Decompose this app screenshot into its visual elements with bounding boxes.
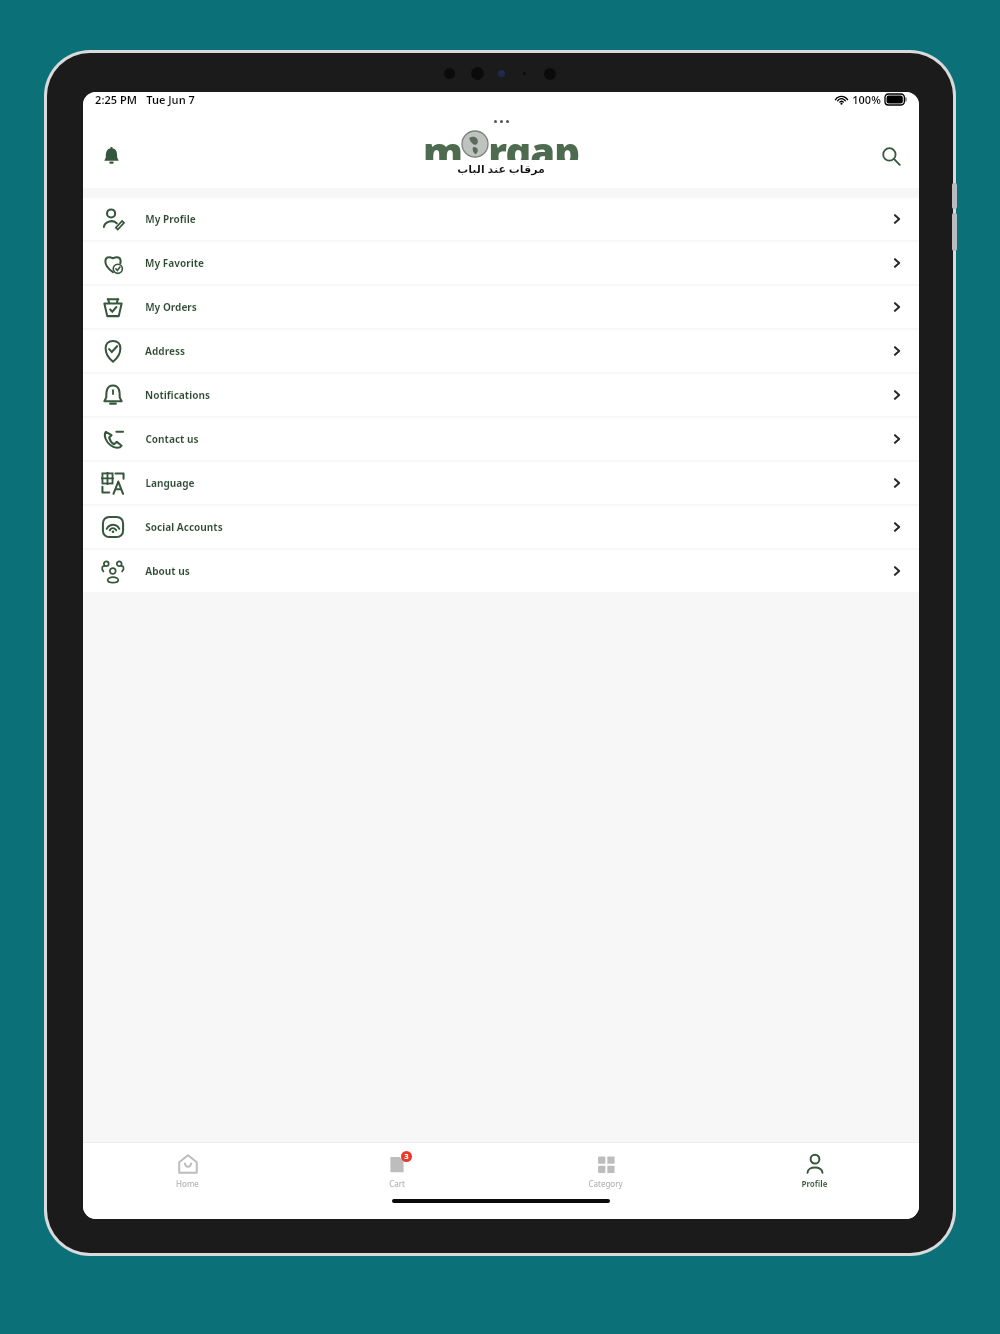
- staticText: 100%: [852, 92, 881, 107]
- staticText: Language: [145, 476, 195, 490]
- staticText: Cart: [389, 1178, 405, 1189]
- staticText: m: [423, 124, 462, 160]
- button[interactable]: Notifications: [83, 374, 919, 416]
- button[interactable]: My Orders: [83, 286, 919, 328]
- button[interactable]: Social Accounts: [83, 506, 919, 548]
- staticText: Address: [145, 344, 185, 358]
- staticText: About us: [145, 564, 190, 578]
- button[interactable]: Address: [83, 330, 919, 372]
- staticText: Profile: [801, 1178, 828, 1189]
- staticText: My Orders: [145, 300, 197, 314]
- button[interactable]: Contact us: [83, 418, 919, 460]
- button[interactable]: Language: [83, 462, 919, 504]
- staticText: Category: [588, 1178, 623, 1189]
- button[interactable]: Category: [501, 1149, 710, 1193]
- staticText: 2:25 PM: [95, 92, 137, 107]
- button[interactable]: 3: [292, 1149, 501, 1193]
- staticText: My Favorite: [145, 256, 204, 270]
- staticText: 3: [404, 1152, 409, 1162]
- button[interactable]: Search: [871, 136, 911, 176]
- button[interactable]: Home: [83, 1149, 292, 1193]
- staticText: rgap: [488, 124, 579, 160]
- staticText: Contact us: [145, 432, 199, 446]
- button[interactable]: About us: [83, 550, 919, 592]
- staticText: Tue Jun 7: [146, 92, 195, 107]
- staticText: Notifications: [145, 388, 210, 402]
- button[interactable]: Profile: [710, 1149, 919, 1193]
- button[interactable]: My Favorite: [83, 242, 919, 284]
- staticText: Social Accounts: [145, 520, 223, 534]
- button[interactable]: My Profile: [83, 198, 919, 240]
- staticText: مرقاب عند الباب: [457, 161, 545, 176]
- staticText: My Profile: [145, 212, 196, 226]
- button[interactable]: Notifications: [91, 136, 131, 176]
- staticText: Home: [176, 1178, 199, 1189]
